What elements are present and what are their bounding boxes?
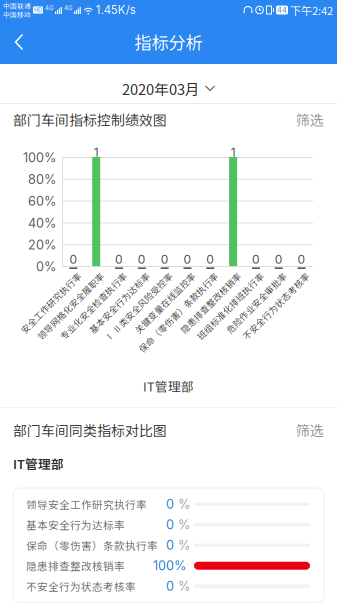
staticText: 20% [28,237,56,252]
staticText: 4G [64,4,72,12]
staticText: 不安全行为状态考核率 [215,269,305,282]
staticText: HD [34,6,42,14]
staticText: 44 [277,6,287,14]
staticText: 不安全行为状态考核率 [26,579,136,594]
staticText: 0 [183,252,191,266]
staticText: 0 [115,252,123,266]
staticText: 0 [166,517,174,532]
staticText: 中国移动 [3,9,31,19]
staticText: 1 [94,145,99,159]
staticText: IT管理部 [13,454,64,473]
staticText: 基本安全行为达标率 [64,269,145,282]
staticText: 危险作业安全审批率 [201,269,282,282]
staticText: 筛选 [296,420,324,440]
button[interactable]: 筛选 [296,109,324,130]
staticText: 隐患排查整改核销率 [26,558,125,573]
staticText: 0 [166,497,174,512]
button[interactable]: 2020年03月 [0,64,337,103]
staticText: 保命（零伤害）条款执行率 [105,269,213,282]
staticText: 40% [28,215,56,231]
staticText: 0% [36,259,56,274]
button[interactable]: Back [0,20,38,64]
staticText: 领导网格化安全履职率 [9,269,99,282]
staticText: % [178,517,190,532]
staticText: 80% [28,172,56,187]
staticText: Ⅰ Ⅱ类安全风险受控率 [76,269,168,282]
button[interactable]: 筛选 [296,420,324,440]
staticText: 100% [23,150,56,165]
staticText: 0 [138,252,146,266]
staticText: 中国联通 [3,1,31,10]
staticText: % [178,579,190,594]
staticText: 0 [275,252,283,266]
staticText: 1.45K/s [96,3,136,17]
staticText: 筛选 [296,109,324,130]
staticText: 下午2:42 [290,2,333,18]
staticText: 0 [161,252,169,266]
staticText: 4G [45,4,53,12]
staticText: 0 [166,579,174,594]
staticText: 领导安全工作研究执行率 [26,497,147,512]
staticText: 100 [153,558,174,573]
staticText: 安全工作研究执行率 [0,269,76,282]
staticText: 1 [231,145,236,159]
staticText: 基本安全行为达标率 [26,517,125,532]
staticText: 0 [166,538,174,553]
staticText: 60% [28,194,56,209]
staticText: 隐患排查整改核销率 [155,269,236,282]
staticText: 部门车间指标控制绩效图 [13,109,167,130]
staticText: % [178,538,190,553]
staticText: 0 [298,252,306,266]
staticText: % [174,558,186,573]
staticText: 0 [69,252,77,266]
staticText: 保命（零伤害）条款执行率 [26,538,158,553]
staticText: 2020年03月 [122,78,200,99]
staticText: % [178,497,190,512]
staticText: 0 [252,252,260,266]
staticText: 班组标准化排班执行率 [169,269,259,282]
staticText: 关键变量在线监控率 [109,269,190,282]
staticText: 专业化安全检查执行率 [32,269,122,282]
staticText: 指标分析 [134,29,202,55]
staticText: 部门车间同类指标对比图 [13,420,167,440]
staticText: IT管理部 [143,377,194,395]
staticText: 0 [206,252,214,266]
